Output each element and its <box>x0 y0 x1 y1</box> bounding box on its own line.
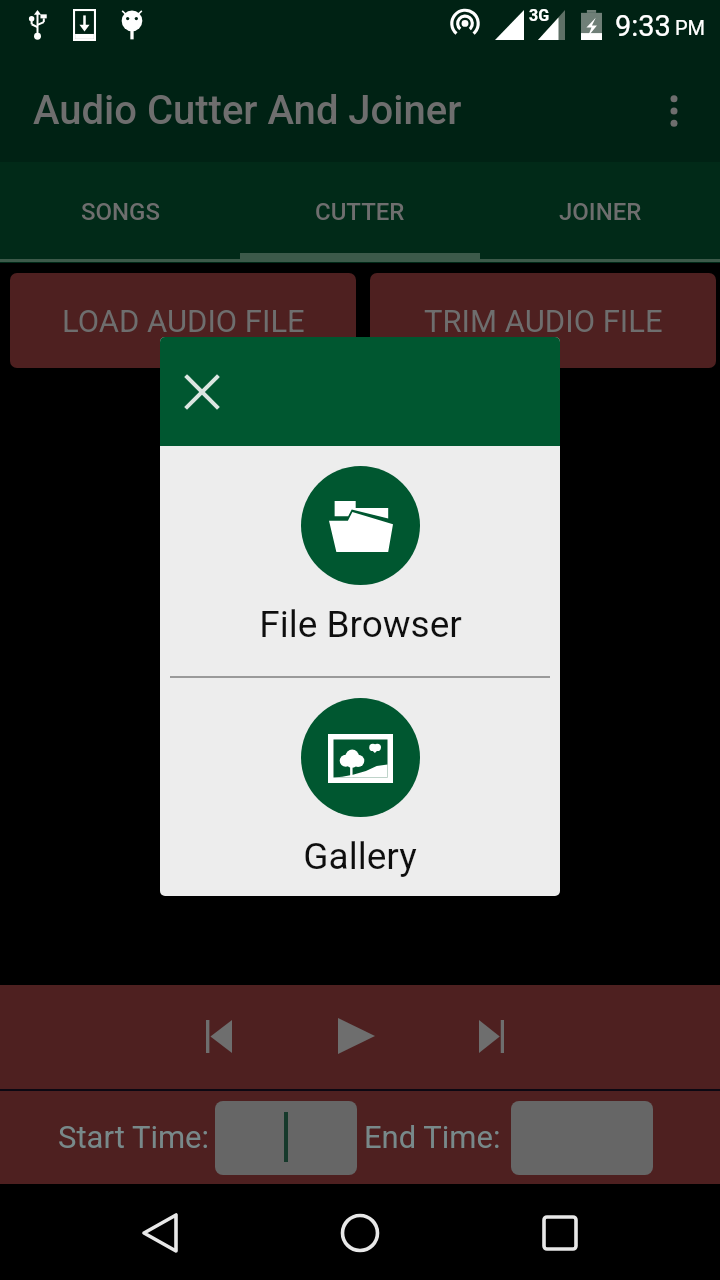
button[interactable]: Gallery <box>160 678 560 896</box>
button[interactable] <box>215 1101 357 1175</box>
button[interactable]: SONGS <box>0 162 240 263</box>
staticText: CUTTER <box>315 198 405 226</box>
staticText: TRIM AUDIO FILE <box>424 303 663 339</box>
button[interactable]: Next <box>452 985 531 1089</box>
button[interactable]: More options <box>650 87 698 135</box>
staticText: Audio Cutter And Joiner <box>33 87 462 134</box>
staticText: Gallery <box>303 835 417 878</box>
button[interactable]: Play <box>316 985 395 1089</box>
staticText: JOINER <box>559 198 642 226</box>
button[interactable]: Back <box>124 1197 196 1269</box>
button[interactable]: CUTTER <box>240 162 480 263</box>
staticText: Start Time: <box>58 1119 210 1155</box>
button[interactable]: Recents <box>524 1197 596 1269</box>
staticText: LOAD AUDIO FILE <box>62 303 305 339</box>
button[interactable]: TRIM AUDIO FILE <box>370 273 716 368</box>
button[interactable]: LOAD AUDIO FILE <box>10 273 356 368</box>
staticText: 9:33 <box>615 9 671 43</box>
button[interactable]: Home <box>324 1197 396 1269</box>
button[interactable]: File Browser <box>160 446 560 676</box>
button[interactable] <box>511 1101 653 1175</box>
button[interactable]: JOINER <box>480 162 720 263</box>
staticText: File Browser <box>259 603 462 646</box>
button[interactable]: Previous <box>179 985 258 1089</box>
staticText: End Time: <box>364 1119 501 1155</box>
button[interactable]: Close <box>174 364 230 420</box>
staticText: PM <box>675 16 706 39</box>
staticText: SONGS <box>81 198 160 226</box>
staticText: 3G <box>529 6 550 25</box>
